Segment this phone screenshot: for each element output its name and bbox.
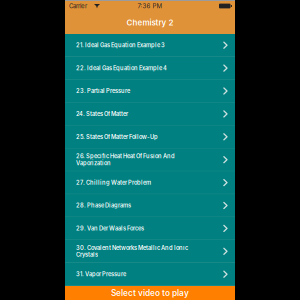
- staticText: Carrier: [69, 2, 87, 10]
- button[interactable]: 22. Ideal Gas Equation Example 4: [65, 57, 235, 80]
- button[interactable]: 29. Van Der Waals Forces: [65, 217, 235, 240]
- staticText: Select video to play: [111, 288, 189, 298]
- button[interactable]: 24. States Of Matter: [65, 103, 235, 126]
- staticText: 30. Covalent Networks Metallic And Ionic…: [76, 244, 188, 258]
- staticText: 31. Vapor Pressure: [76, 271, 126, 278]
- staticText: 23. Partial Pressure: [76, 87, 130, 94]
- button[interactable]: Select video to play: [65, 286, 235, 300]
- button[interactable]: 25. States Of Matter Follow-Up: [65, 126, 235, 148]
- staticText: 25. States Of Matter Follow-Up: [76, 133, 158, 140]
- staticText: 22. Ideal Gas Equation Example 4: [76, 65, 167, 71]
- button[interactable]: 28. Phase Diagrams: [65, 194, 235, 217]
- staticText: 28. Phase Diagrams: [76, 202, 131, 209]
- staticText: 21. Ideal Gas Equation Example 3: [76, 42, 165, 49]
- button[interactable]: 31. Vapor Pressure: [65, 263, 235, 286]
- staticText: 27. Chilling Water Problem: [76, 179, 151, 186]
- staticText: 7:36 PM: [137, 2, 162, 10]
- staticText: 24. States Of Matter: [76, 110, 128, 117]
- staticText: 29. Van Der Waals Forces: [76, 225, 144, 232]
- staticText: Chemistry 2: [126, 18, 173, 27]
- button[interactable]: 23. Partial Pressure: [65, 80, 235, 103]
- button[interactable]: 26. Specific Heat Heat Of Fusion And Vap…: [65, 148, 235, 171]
- button[interactable]: 30. Covalent Networks Metallic And Ionic…: [65, 240, 235, 263]
- button[interactable]: 21. Ideal Gas Equation Example 3: [65, 34, 235, 57]
- button[interactable]: 27. Chilling Water Problem: [65, 171, 235, 194]
- staticText: 26. Specific Heat Heat Of Fusion And Vap…: [76, 153, 175, 167]
